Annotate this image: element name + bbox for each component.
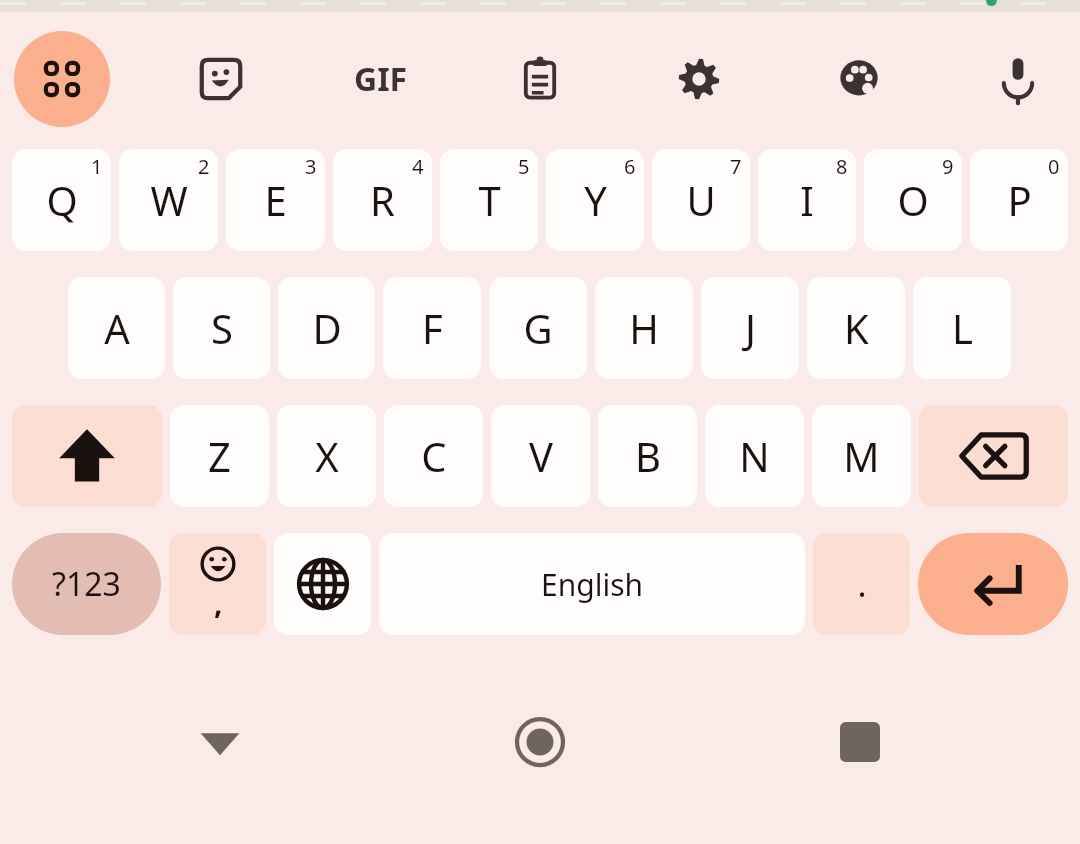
button[interactable]: V bbox=[491, 405, 590, 507]
staticText: 4 bbox=[412, 153, 424, 180]
button[interactable]: L bbox=[913, 277, 1011, 379]
staticText: 5 bbox=[518, 153, 530, 180]
staticText: T bbox=[478, 173, 501, 227]
button[interactable]: . bbox=[813, 533, 910, 635]
button[interactable]: Change language bbox=[274, 533, 371, 635]
staticText: . bbox=[857, 561, 867, 607]
button[interactable]: O bbox=[864, 149, 962, 251]
button[interactable]: S bbox=[173, 277, 270, 379]
staticText: M bbox=[843, 429, 880, 483]
button[interactable]: ?123 bbox=[12, 533, 161, 635]
staticText: C bbox=[421, 429, 447, 483]
staticText: L bbox=[952, 301, 973, 355]
staticText: X bbox=[315, 429, 339, 483]
staticText: English bbox=[541, 564, 644, 605]
staticText: 3 bbox=[305, 153, 317, 180]
staticText: 0 bbox=[1048, 153, 1060, 180]
button[interactable]: Backspace bbox=[919, 405, 1068, 507]
staticText: P bbox=[1007, 173, 1032, 227]
staticText: J bbox=[745, 301, 756, 355]
button[interactable]: A bbox=[68, 277, 165, 379]
staticText: V bbox=[529, 429, 553, 483]
staticText: 1 bbox=[91, 153, 103, 180]
button[interactable]: X bbox=[277, 405, 376, 507]
staticText: , bbox=[214, 582, 223, 623]
button[interactable]: C bbox=[384, 405, 483, 507]
staticText: N bbox=[739, 429, 770, 483]
button[interactable]: Clipboard bbox=[492, 31, 588, 127]
button[interactable]: Voice input bbox=[970, 31, 1066, 127]
staticText: F bbox=[422, 301, 443, 355]
staticText: 7 bbox=[730, 153, 742, 180]
staticText: 6 bbox=[624, 153, 636, 180]
staticText: 2 bbox=[198, 153, 210, 180]
button[interactable]: G bbox=[489, 277, 587, 379]
staticText: S bbox=[211, 301, 233, 355]
button[interactable]: D bbox=[278, 277, 375, 379]
staticText: E bbox=[264, 173, 287, 227]
staticText: 8 bbox=[836, 153, 848, 180]
staticText: B bbox=[635, 429, 661, 483]
staticText: W bbox=[150, 173, 188, 227]
button[interactable]: Y bbox=[546, 149, 644, 251]
button[interactable]: N bbox=[705, 405, 804, 507]
button[interactable]: I bbox=[758, 149, 856, 251]
staticText: GIF bbox=[354, 57, 408, 101]
button[interactable]: GIF bbox=[333, 31, 429, 127]
button[interactable]: Toolbox bbox=[14, 31, 110, 127]
button[interactable]: Recent apps bbox=[820, 702, 900, 782]
staticText: Y bbox=[584, 173, 607, 227]
button[interactable]: Hide keyboard bbox=[180, 702, 260, 782]
button[interactable]: H bbox=[595, 277, 693, 379]
staticText: 9 bbox=[942, 153, 954, 180]
button[interactable]: Themes bbox=[811, 31, 907, 127]
button[interactable]: K bbox=[807, 277, 905, 379]
button[interactable]: Z bbox=[170, 405, 269, 507]
staticText: O bbox=[897, 173, 929, 227]
button[interactable]: P bbox=[970, 149, 1068, 251]
button[interactable]: M bbox=[812, 405, 911, 507]
staticText: Z bbox=[208, 429, 231, 483]
staticText: ?123 bbox=[52, 562, 121, 606]
button[interactable]: Stickers bbox=[173, 31, 269, 127]
button[interactable]: W bbox=[119, 149, 218, 251]
button[interactable]: Emoji bbox=[169, 533, 266, 635]
staticText: Q bbox=[46, 173, 78, 227]
button[interactable]: F bbox=[383, 277, 481, 379]
staticText: D bbox=[312, 301, 342, 355]
staticText: H bbox=[629, 301, 659, 355]
staticText: R bbox=[370, 173, 395, 227]
staticText: A bbox=[104, 301, 130, 355]
staticText: K bbox=[844, 301, 869, 355]
button[interactable]: E bbox=[226, 149, 325, 251]
button[interactable]: English bbox=[379, 533, 805, 635]
staticText: I bbox=[800, 173, 814, 227]
button[interactable]: B bbox=[598, 405, 697, 507]
staticText: G bbox=[523, 301, 553, 355]
button[interactable]: Shift bbox=[12, 405, 162, 507]
button[interactable]: Enter bbox=[918, 533, 1068, 635]
button[interactable]: T bbox=[440, 149, 538, 251]
staticText: U bbox=[686, 173, 716, 227]
button[interactable]: U bbox=[652, 149, 750, 251]
button[interactable]: R bbox=[333, 149, 432, 251]
button[interactable]: J bbox=[701, 277, 799, 379]
button[interactable]: Settings bbox=[651, 31, 747, 127]
button[interactable]: Q bbox=[12, 149, 111, 251]
button[interactable]: Home bbox=[500, 702, 580, 782]
